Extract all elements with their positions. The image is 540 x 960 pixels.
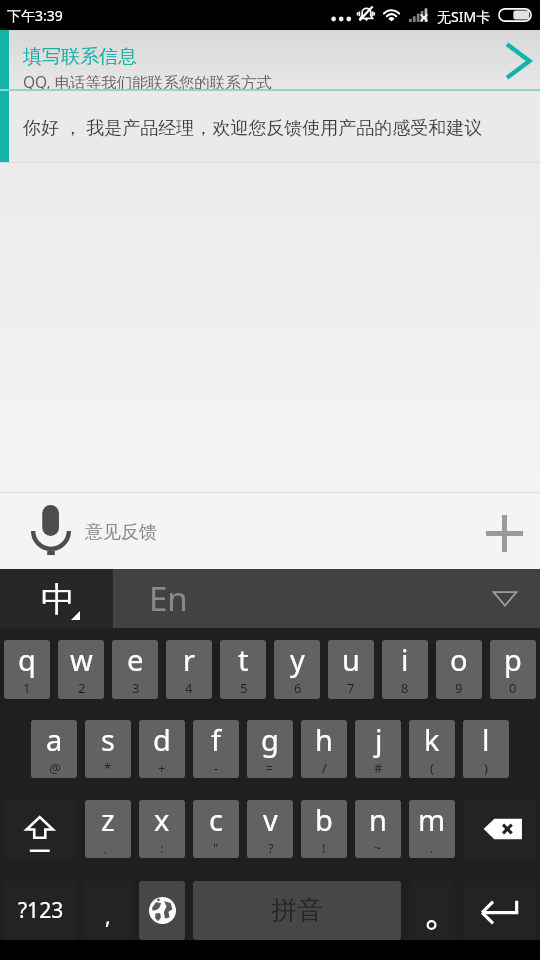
staticText: k <box>424 720 440 759</box>
button[interactable]: m <box>409 800 455 858</box>
button[interactable]: d <box>139 720 185 778</box>
button[interactable]: Voice input <box>21 500 81 560</box>
other: Open contact info <box>502 41 530 81</box>
staticText: + <box>158 759 166 777</box>
staticText: z <box>101 800 115 839</box>
staticText: . <box>430 839 434 857</box>
staticText: 9 <box>455 679 463 697</box>
staticText: 、 <box>102 839 115 855</box>
staticText: e <box>127 640 144 679</box>
button[interactable]: n <box>355 800 401 858</box>
staticText: ( <box>430 759 434 777</box>
button[interactable]: t <box>220 640 266 699</box>
staticText: p <box>504 640 522 679</box>
button[interactable]: En <box>113 569 540 628</box>
staticText: 无SIM卡 <box>437 7 491 26</box>
button[interactable]: 填写联系信息 <box>0 30 540 91</box>
staticText: 1 <box>23 679 31 697</box>
staticText: v <box>263 800 278 839</box>
button[interactable]: f <box>193 720 239 778</box>
button[interactable]: k <box>409 720 455 778</box>
staticText: QQ, 电话等我们能联系您的联系方式 <box>23 71 272 92</box>
button[interactable]: c <box>193 800 239 858</box>
button[interactable]: l <box>463 720 509 778</box>
staticText: c <box>209 800 223 839</box>
button[interactable]: o <box>436 640 482 699</box>
staticText: h <box>315 720 333 759</box>
button[interactable]: Switch language <box>139 881 185 940</box>
button[interactable]: u <box>328 640 374 699</box>
staticText: t <box>238 640 249 679</box>
staticText: 5 <box>240 679 248 697</box>
button[interactable]: r <box>166 640 212 699</box>
staticText: 7 <box>347 679 355 697</box>
staticText: a <box>46 720 63 759</box>
button[interactable]: Shift <box>4 800 77 858</box>
button[interactable]: Backspace <box>463 800 536 858</box>
staticText: : <box>160 839 164 857</box>
button[interactable]: g <box>247 720 293 778</box>
staticText: f <box>211 720 221 759</box>
staticText: @ <box>49 759 61 777</box>
other: Hide keyboard <box>492 588 518 609</box>
button[interactable]: a <box>31 720 77 778</box>
staticText: ) <box>484 759 488 777</box>
staticText: * <box>104 759 112 777</box>
staticText: 下午3:39 <box>7 6 63 25</box>
button[interactable]: z <box>85 800 131 858</box>
staticText: w <box>70 640 93 679</box>
staticText: 中 <box>41 578 75 621</box>
button[interactable]: Add attachment <box>474 503 534 563</box>
button[interactable]: v <box>247 800 293 858</box>
button[interactable]: 拼音 <box>193 881 401 940</box>
staticText: y <box>290 640 305 679</box>
staticText: 填写联系信息 <box>23 45 137 69</box>
staticText: ! <box>322 839 326 857</box>
button[interactable]: i <box>382 640 428 699</box>
button[interactable]: w <box>58 640 104 699</box>
staticText: l <box>482 720 490 759</box>
button[interactable]: j <box>355 720 401 778</box>
button[interactable]: s <box>85 720 131 778</box>
staticText: x <box>154 800 170 839</box>
staticText: u <box>342 640 360 679</box>
staticText: j <box>375 720 383 759</box>
button[interactable]: x <box>139 800 185 858</box>
staticText: b <box>315 800 333 839</box>
staticText: g <box>261 720 279 759</box>
button[interactable]: q <box>4 640 50 699</box>
staticText: , <box>105 902 111 931</box>
staticText: - <box>214 759 219 777</box>
staticText: q <box>18 640 36 679</box>
staticText: ? <box>268 839 274 857</box>
staticText: 拼音 <box>271 894 323 927</box>
button[interactable]: ?123 <box>4 881 77 940</box>
staticText: r <box>183 640 195 679</box>
staticText: 3 <box>132 679 140 697</box>
staticText: m <box>418 800 446 839</box>
button[interactable]: Period <box>409 881 455 940</box>
button[interactable]: 中 <box>0 569 113 628</box>
button[interactable]: b <box>301 800 347 858</box>
staticText: 2 <box>78 679 86 697</box>
staticText: " <box>213 839 219 857</box>
staticText: s <box>101 720 115 759</box>
staticText: n <box>369 800 387 839</box>
button[interactable]: h <box>301 720 347 778</box>
staticText: 8 <box>401 679 409 697</box>
button[interactable]: e <box>112 640 158 699</box>
staticText: i <box>401 640 409 679</box>
button[interactable]: y <box>274 640 320 699</box>
staticText: 4 <box>185 679 193 697</box>
button[interactable]: Enter <box>463 881 536 940</box>
staticText: En <box>149 576 188 621</box>
staticText: = <box>266 759 274 777</box>
staticText: / <box>322 759 327 777</box>
staticText: 意见反馈 <box>85 521 157 544</box>
button[interactable]: p <box>490 640 536 699</box>
staticText: 6 <box>294 679 302 697</box>
staticText: 0 <box>509 679 517 697</box>
staticText: # <box>374 759 383 777</box>
staticText: ?123 <box>18 896 64 925</box>
button[interactable]: , <box>85 881 131 940</box>
